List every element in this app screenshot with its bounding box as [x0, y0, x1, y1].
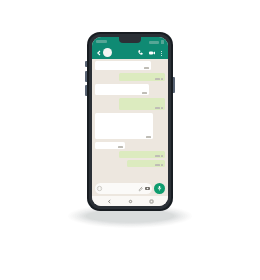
button[interactable]: More options: [157, 49, 165, 57]
button[interactable]: Video call: [147, 48, 156, 57]
button[interactable]: [127, 160, 165, 167]
button[interactable]: Contact profile: [103, 48, 112, 57]
button[interactable]: [119, 73, 165, 81]
button[interactable]: [119, 98, 165, 110]
button[interactable]: Send voice message: [154, 183, 165, 194]
button[interactable]: Home: [126, 197, 134, 205]
button[interactable]: Voice call: [136, 48, 145, 57]
button[interactable]: Back: [105, 197, 113, 205]
button[interactable]: [95, 183, 152, 194]
button[interactable]: [95, 61, 151, 70]
button[interactable]: Back: [95, 49, 102, 56]
button[interactable]: Recent apps: [147, 197, 155, 205]
button[interactable]: [95, 84, 149, 95]
button[interactable]: [95, 142, 125, 149]
button[interactable]: [95, 113, 153, 139]
button[interactable]: [119, 151, 165, 158]
